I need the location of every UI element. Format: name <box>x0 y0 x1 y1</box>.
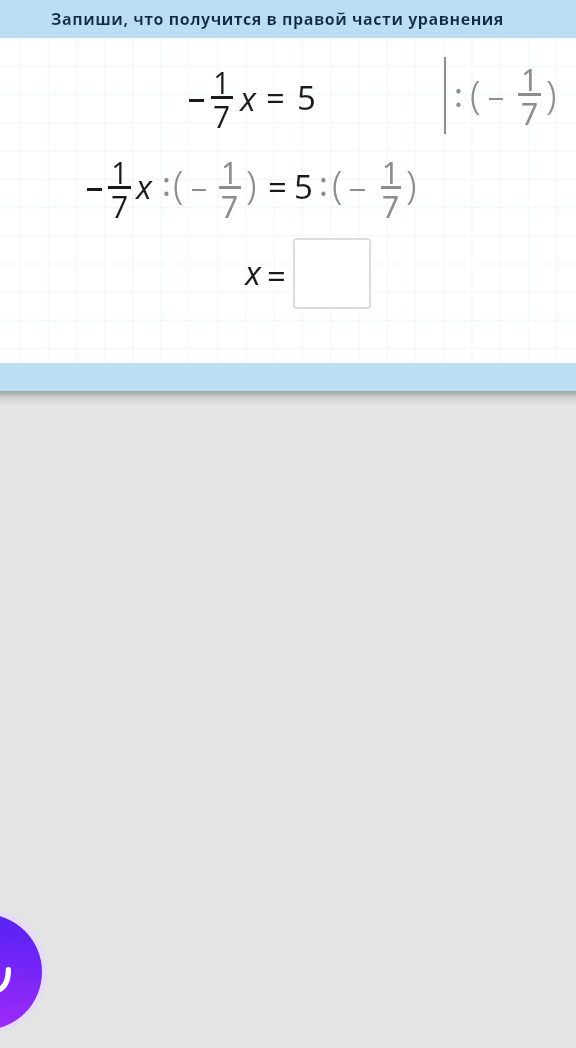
staticText: 5 <box>297 75 316 120</box>
button[interactable] <box>293 238 371 309</box>
staticText: 7 <box>111 186 129 227</box>
staticText: 7 <box>213 96 231 137</box>
staticText: ) <box>546 68 557 120</box>
staticText: x <box>240 76 256 121</box>
staticText: x <box>136 164 152 209</box>
staticText: = <box>268 164 287 209</box>
staticText: ( <box>173 158 184 210</box>
staticText: 1 <box>213 62 231 103</box>
staticText: : <box>162 161 171 206</box>
staticText: 1 <box>111 152 129 193</box>
staticText: 7 <box>382 186 400 227</box>
staticText: = <box>267 253 286 298</box>
staticText: : <box>319 161 328 206</box>
staticText: Запиши, что получится в правой части ура… <box>51 8 504 30</box>
staticText: 5 <box>294 164 313 209</box>
staticText: x <box>245 250 261 295</box>
staticText: ( <box>332 158 343 210</box>
staticText: ( <box>470 68 481 120</box>
staticText: 7 <box>221 186 239 227</box>
staticText: : <box>454 72 463 117</box>
staticText: ) <box>246 158 257 210</box>
button[interactable]: Voice assistant <box>0 914 42 1030</box>
staticText: = <box>266 75 285 120</box>
staticText: 1 <box>221 152 239 193</box>
staticText: 1 <box>382 152 400 193</box>
staticText: 1 <box>521 59 539 100</box>
button[interactable]: Запиши, что получится в правой части ура… <box>0 0 576 38</box>
staticText: 7 <box>521 93 539 134</box>
staticText: ) <box>406 158 417 210</box>
